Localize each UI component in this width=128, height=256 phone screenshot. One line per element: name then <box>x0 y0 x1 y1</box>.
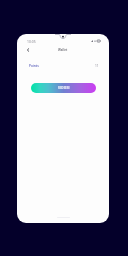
staticText: Points <box>29 64 39 68</box>
button[interactable]: REDEEM <box>31 83 96 93</box>
staticText: 10:05 <box>27 39 36 44</box>
staticText: 11 <box>95 64 99 68</box>
staticText: REDEEM <box>58 86 70 90</box>
button[interactable]: Back <box>22 44 33 55</box>
staticText: Wallet <box>58 48 68 52</box>
